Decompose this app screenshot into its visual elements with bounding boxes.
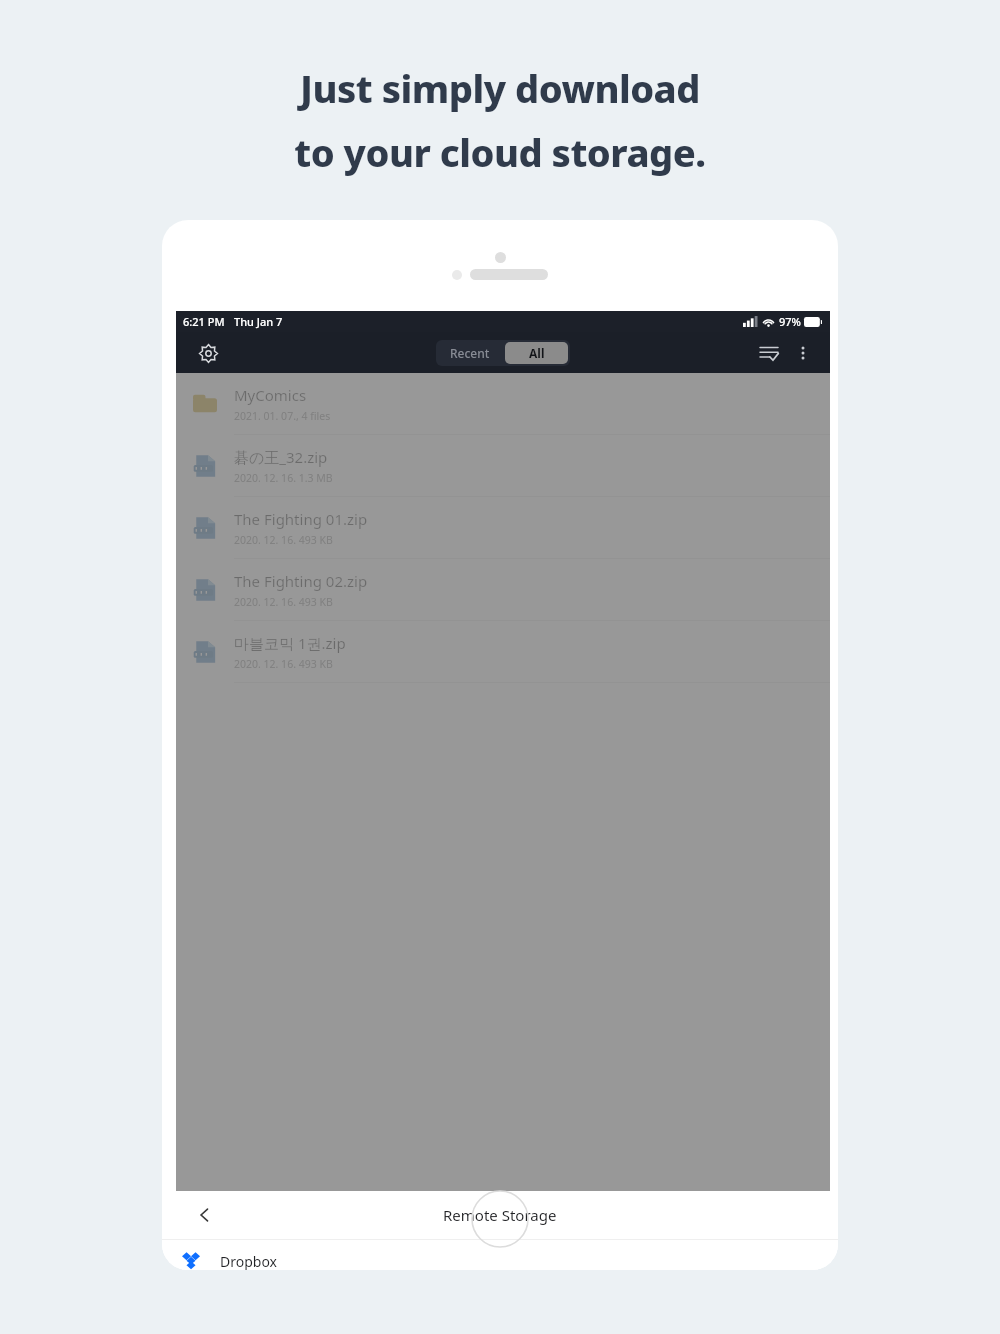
staticText: All	[529, 345, 545, 361]
staticText: 2020. 12. 16. 1.3 MB	[234, 471, 333, 485]
button[interactable]: Select items	[752, 336, 786, 370]
staticText: The Fighting 02.zip	[234, 571, 368, 591]
staticText: Dropbox	[220, 1252, 278, 1270]
staticText: 6:21 PM	[183, 314, 225, 329]
button[interactable]: 마블코믹 1권.zip	[176, 621, 830, 682]
button[interactable]: Dropbox	[162, 1240, 838, 1270]
button[interactable]: Recent	[436, 340, 503, 366]
staticText: 마블코믹 1권.zip	[234, 633, 346, 653]
button[interactable]: More options	[786, 336, 820, 370]
staticText: to your cloud storage.	[294, 126, 706, 178]
staticText: 2020. 12. 16. 493 KB	[234, 533, 333, 547]
staticText: Remote Storage	[443, 1205, 557, 1225]
button[interactable]: The Fighting 01.zip	[176, 497, 830, 558]
staticText: 碁の王_32.zip	[234, 447, 328, 467]
button[interactable]: MyComics	[176, 373, 830, 434]
staticText: Recent	[450, 345, 490, 361]
button[interactable]: The Fighting 02.zip	[176, 559, 830, 620]
staticText: 2020. 12. 16. 493 KB	[234, 595, 333, 609]
staticText: Thu Jan 7	[234, 314, 283, 329]
staticText: MyComics	[234, 385, 307, 405]
button[interactable]: Settings	[191, 336, 225, 370]
staticText: 2020. 12. 16. 493 KB	[234, 657, 333, 671]
staticText: The Fighting 01.zip	[234, 509, 368, 529]
button[interactable]: 碁の王_32.zip	[176, 435, 830, 496]
staticText: Just simply download	[300, 62, 700, 114]
staticText: 2021. 01. 07., 4 files	[234, 409, 331, 423]
button[interactable]: All	[505, 342, 568, 364]
button[interactable]: Back	[188, 1198, 222, 1232]
staticText: 97%	[779, 314, 801, 329]
